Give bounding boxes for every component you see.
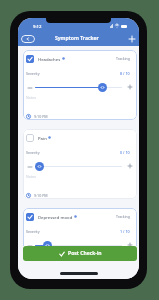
button[interactable]: Decrease severity xyxy=(24,82,35,93)
staticText: Depressed mood xyxy=(38,214,73,220)
staticText: 0 / 10 xyxy=(120,150,130,155)
staticText: Tracking xyxy=(116,56,130,61)
button[interactable]: Headaches xyxy=(23,50,137,120)
staticText: Severity xyxy=(26,150,40,155)
staticText: 9:10 PM xyxy=(34,193,48,198)
button[interactable]: Decrease severity xyxy=(24,240,35,251)
staticText: Symptom Tracker xyxy=(55,35,99,42)
button[interactable]: Decrease severity xyxy=(24,161,35,172)
staticText: Tracking xyxy=(116,214,130,219)
staticText: 9:10 PM xyxy=(34,114,48,119)
staticText: Notes xyxy=(26,174,37,179)
button[interactable]: Increase severity xyxy=(124,160,136,172)
staticText: 9:12 xyxy=(33,23,42,29)
staticText: Severity xyxy=(26,71,40,76)
staticText: Post Check-in xyxy=(68,250,102,257)
staticText: 8 / 10 xyxy=(120,71,130,76)
staticText: Severity xyxy=(26,229,40,234)
button[interactable]: Back xyxy=(21,35,35,43)
button[interactable]: Post Check-in xyxy=(23,246,137,261)
staticText: Notes xyxy=(26,95,37,100)
button[interactable]: Increase severity xyxy=(124,81,136,93)
button[interactable]: Pain xyxy=(23,129,137,199)
staticText: Pain xyxy=(38,135,47,141)
button[interactable]: Depressed mood xyxy=(23,208,137,278)
staticText: 1 / 10 xyxy=(120,229,130,234)
staticText: Headaches xyxy=(38,56,61,62)
button[interactable]: Add symptom xyxy=(127,34,137,44)
button[interactable]: Increase severity xyxy=(124,239,136,251)
